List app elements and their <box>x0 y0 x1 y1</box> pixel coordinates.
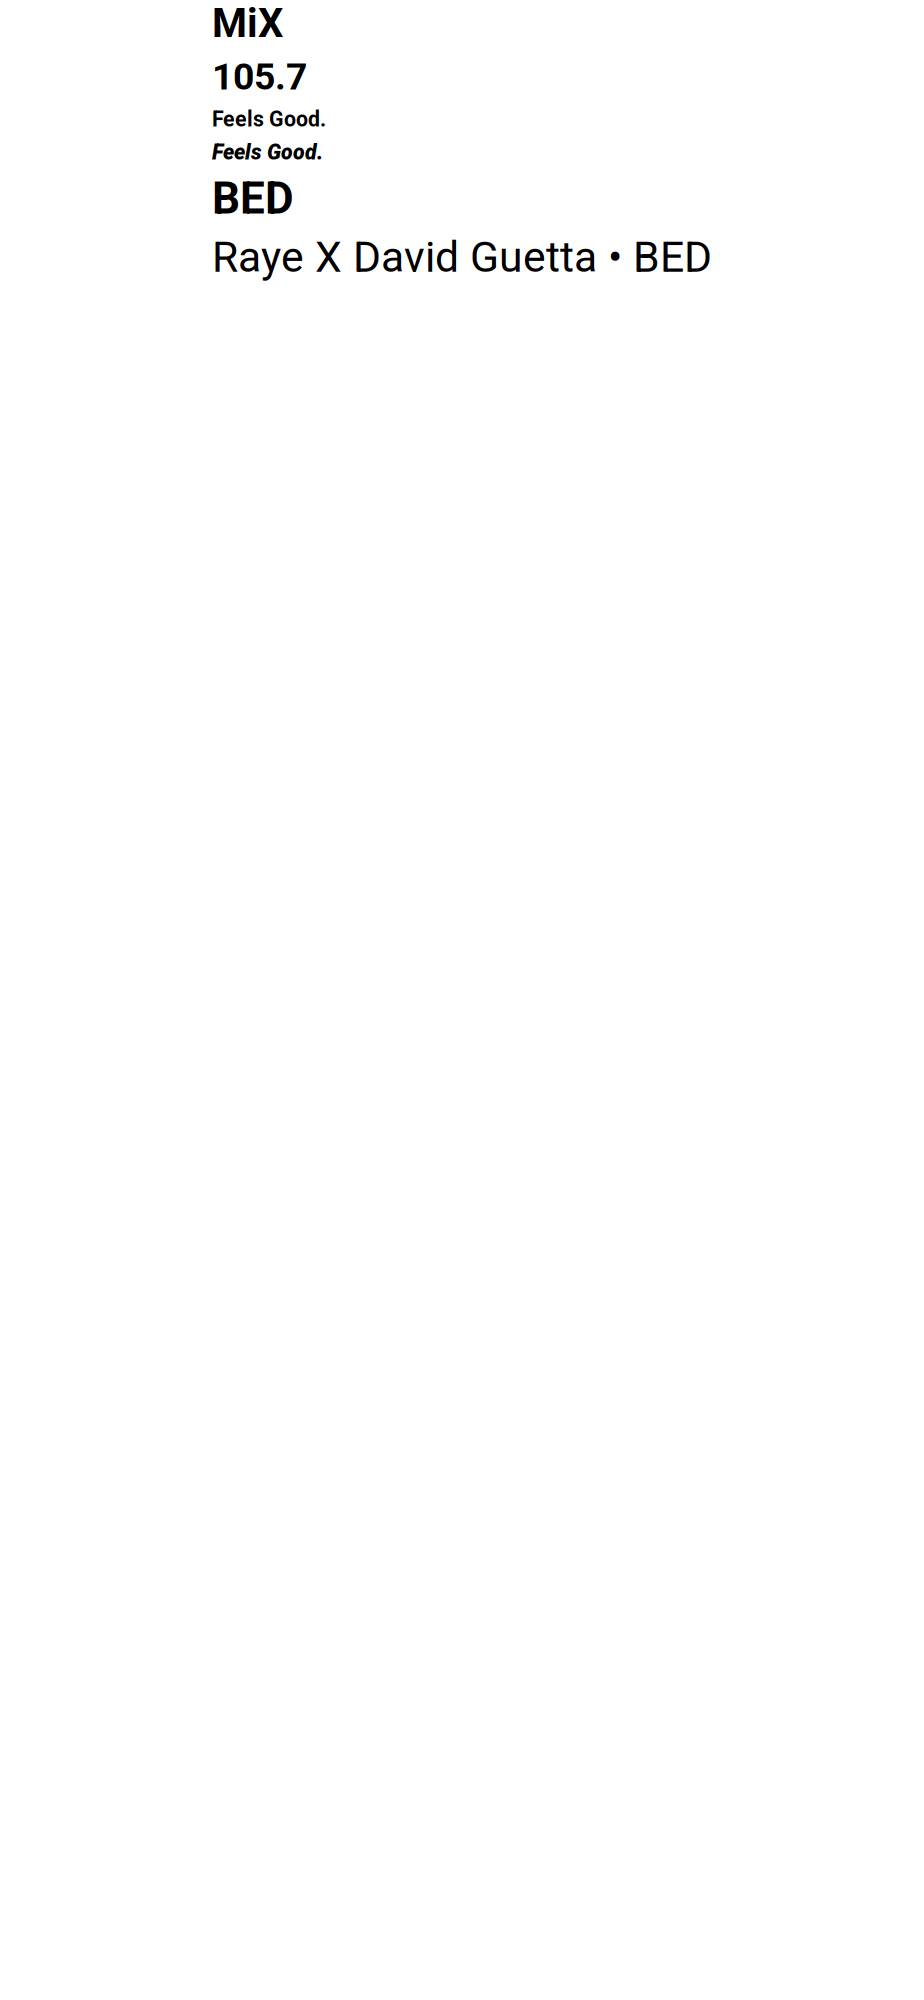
staticText: Raye X David Guetta • BED <box>212 232 712 282</box>
staticText: BED <box>212 173 294 224</box>
staticText: 105.7 <box>212 55 307 99</box>
staticText: MiX <box>212 0 283 47</box>
staticText: Feels Good. <box>212 107 326 132</box>
staticText: Feels Good. <box>212 140 323 165</box>
